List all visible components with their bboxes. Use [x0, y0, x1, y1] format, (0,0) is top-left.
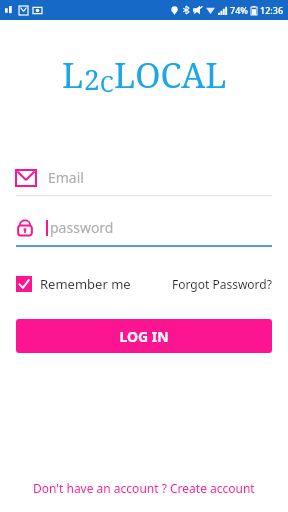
- button[interactable]: Remember me: [16, 275, 131, 293]
- staticText: 74%: [230, 4, 248, 16]
- staticText: 2: [84, 60, 100, 98]
- button[interactable]: LOG IN: [16, 319, 272, 353]
- staticText: L: [62, 52, 84, 98]
- staticText: Remember me: [40, 275, 131, 293]
- button[interactable]: Forgot Password?: [172, 276, 272, 292]
- staticText: C: [100, 68, 114, 98]
- staticText: Forgot Password?: [172, 276, 272, 292]
- staticText: LOG IN: [119, 327, 169, 346]
- staticText: LOCAL: [114, 52, 227, 98]
- button[interactable]: Don't have an account ? Create account: [0, 480, 288, 512]
- staticText: Email: [48, 168, 84, 187]
- staticText: password: [50, 218, 114, 237]
- staticText: 12:36: [260, 4, 284, 16]
- staticText: Don't have an account ? Create account: [33, 480, 255, 496]
